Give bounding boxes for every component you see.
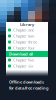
staticText: Offline downloads bbox=[9, 79, 44, 85]
staticText: Library bbox=[20, 22, 34, 27]
button[interactable]: Chapter four bbox=[6, 45, 48, 51]
staticText: for data-free reading bbox=[9, 85, 49, 91]
button[interactable]: Chapter five bbox=[6, 57, 48, 63]
button[interactable]: Chapter three bbox=[6, 39, 48, 45]
staticText: Chapter one bbox=[13, 27, 34, 33]
staticText: Chapter five bbox=[13, 57, 34, 63]
staticText: Chapter six bbox=[13, 63, 33, 69]
button[interactable]: Chapter one bbox=[6, 27, 48, 33]
staticText: Chapter four bbox=[13, 45, 35, 51]
staticText: Chapter seven bbox=[13, 69, 38, 75]
button[interactable]: Chapter seven bbox=[6, 69, 48, 75]
staticText: Download all bbox=[9, 51, 33, 57]
button[interactable]: Chapter six bbox=[6, 63, 48, 69]
staticText: Chapter three bbox=[13, 39, 37, 45]
button[interactable]: Chapter two bbox=[6, 33, 48, 39]
staticText: Chapter two bbox=[13, 33, 34, 39]
